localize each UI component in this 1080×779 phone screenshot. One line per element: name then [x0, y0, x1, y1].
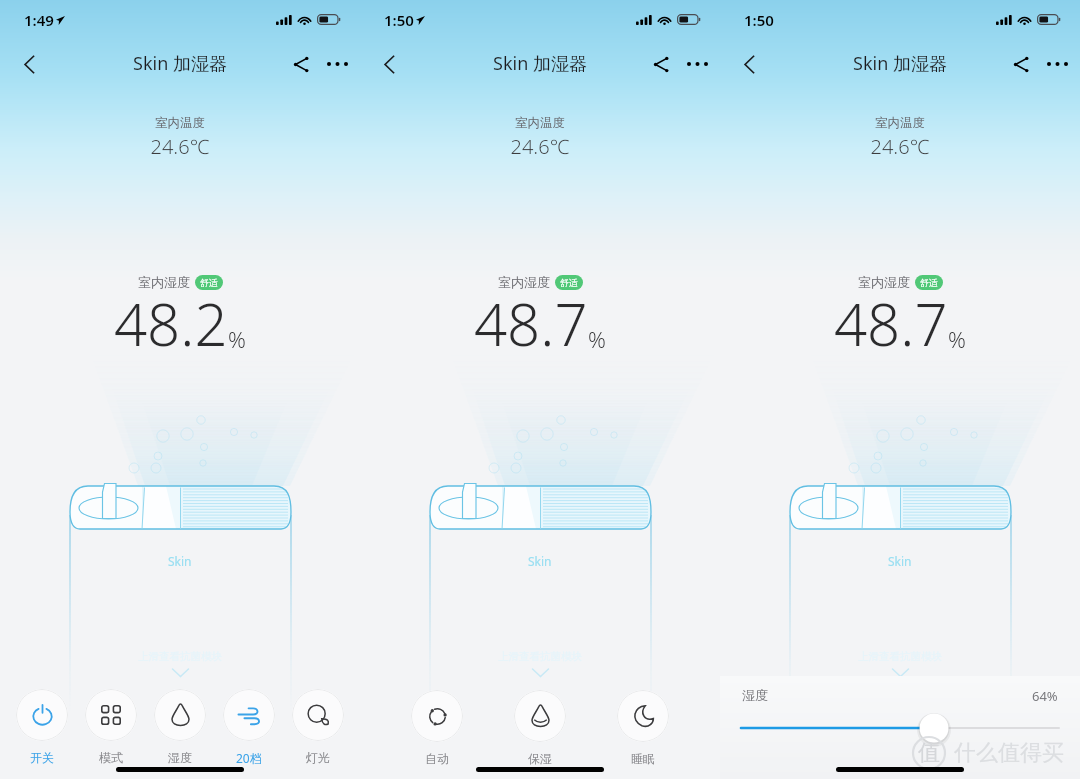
button[interactable]: 模式 [79, 689, 143, 765]
staticText: % [588, 324, 606, 354]
button[interactable]: Share [1003, 46, 1039, 82]
staticText: 湿度 [742, 687, 768, 703]
button[interactable]: 开关 [10, 689, 74, 765]
button[interactable]: More options [319, 46, 355, 82]
staticText: % [228, 324, 246, 354]
staticText: Skin 加湿器 [853, 51, 947, 76]
staticText: 模式 [99, 750, 123, 765]
staticText: 自动 [425, 751, 449, 766]
staticText: 1:49 [24, 10, 54, 30]
button[interactable]: Humidity slider [741, 712, 1059, 744]
staticText: 48.7 [474, 284, 588, 363]
staticText: 什么值得买 [954, 739, 1064, 767]
staticText: 室内温度 [720, 115, 1080, 131]
button[interactable]: Back [10, 45, 48, 83]
button[interactable]: Back [370, 45, 408, 83]
staticText: 上滑查看抗菌模块 [498, 650, 582, 663]
staticText: Skin [528, 553, 552, 569]
button[interactable]: Share [643, 46, 679, 82]
button[interactable]: Share [283, 46, 319, 82]
staticText: 24.6℃ [720, 133, 1080, 160]
staticText: 开关 [30, 750, 54, 765]
staticText: 舒适 [920, 277, 938, 288]
staticText: 24.6℃ [0, 133, 360, 160]
staticText: 舒适 [200, 277, 218, 288]
staticText: Skin [888, 553, 912, 569]
button[interactable]: 湿度 [148, 689, 212, 765]
button[interactable]: More options [1039, 46, 1075, 82]
staticText: 睡眠 [631, 751, 655, 766]
staticText: 48.2 [114, 284, 228, 363]
button[interactable]: More options [679, 46, 715, 82]
staticText: 1:50 [744, 10, 774, 30]
staticText: 保湿 [528, 751, 552, 766]
staticText: 64% [1032, 687, 1058, 705]
staticText: 48.7 [834, 284, 948, 363]
staticText: 舒适 [560, 277, 578, 288]
staticText: % [948, 324, 966, 354]
staticText: 室内湿度 [498, 274, 550, 290]
staticText: Skin 加湿器 [493, 51, 587, 76]
button[interactable]: 睡眠 [611, 690, 675, 766]
staticText: 20档 [236, 750, 262, 766]
staticText: Skin [168, 553, 192, 569]
staticText: 室内温度 [0, 115, 360, 131]
staticText: 值 [918, 739, 940, 767]
staticText: 室内湿度 [138, 274, 190, 290]
staticText: Skin 加湿器 [133, 51, 227, 76]
staticText: 上滑查看抗菌模块 [138, 650, 222, 663]
button[interactable]: 20档 [217, 689, 281, 766]
staticText: 室内湿度 [858, 274, 910, 290]
button[interactable]: 自动 [405, 690, 469, 766]
button[interactable]: 保湿 [508, 690, 572, 766]
button[interactable]: 灯光 [286, 689, 350, 765]
staticText: 室内温度 [360, 115, 720, 131]
staticText: 灯光 [306, 750, 330, 765]
staticText: 湿度 [168, 750, 192, 765]
staticText: 1:50 [384, 10, 414, 30]
staticText: 上滑查看抗菌模块 [858, 650, 942, 663]
button[interactable]: Back [730, 45, 768, 83]
staticText: 24.6℃ [360, 133, 720, 160]
